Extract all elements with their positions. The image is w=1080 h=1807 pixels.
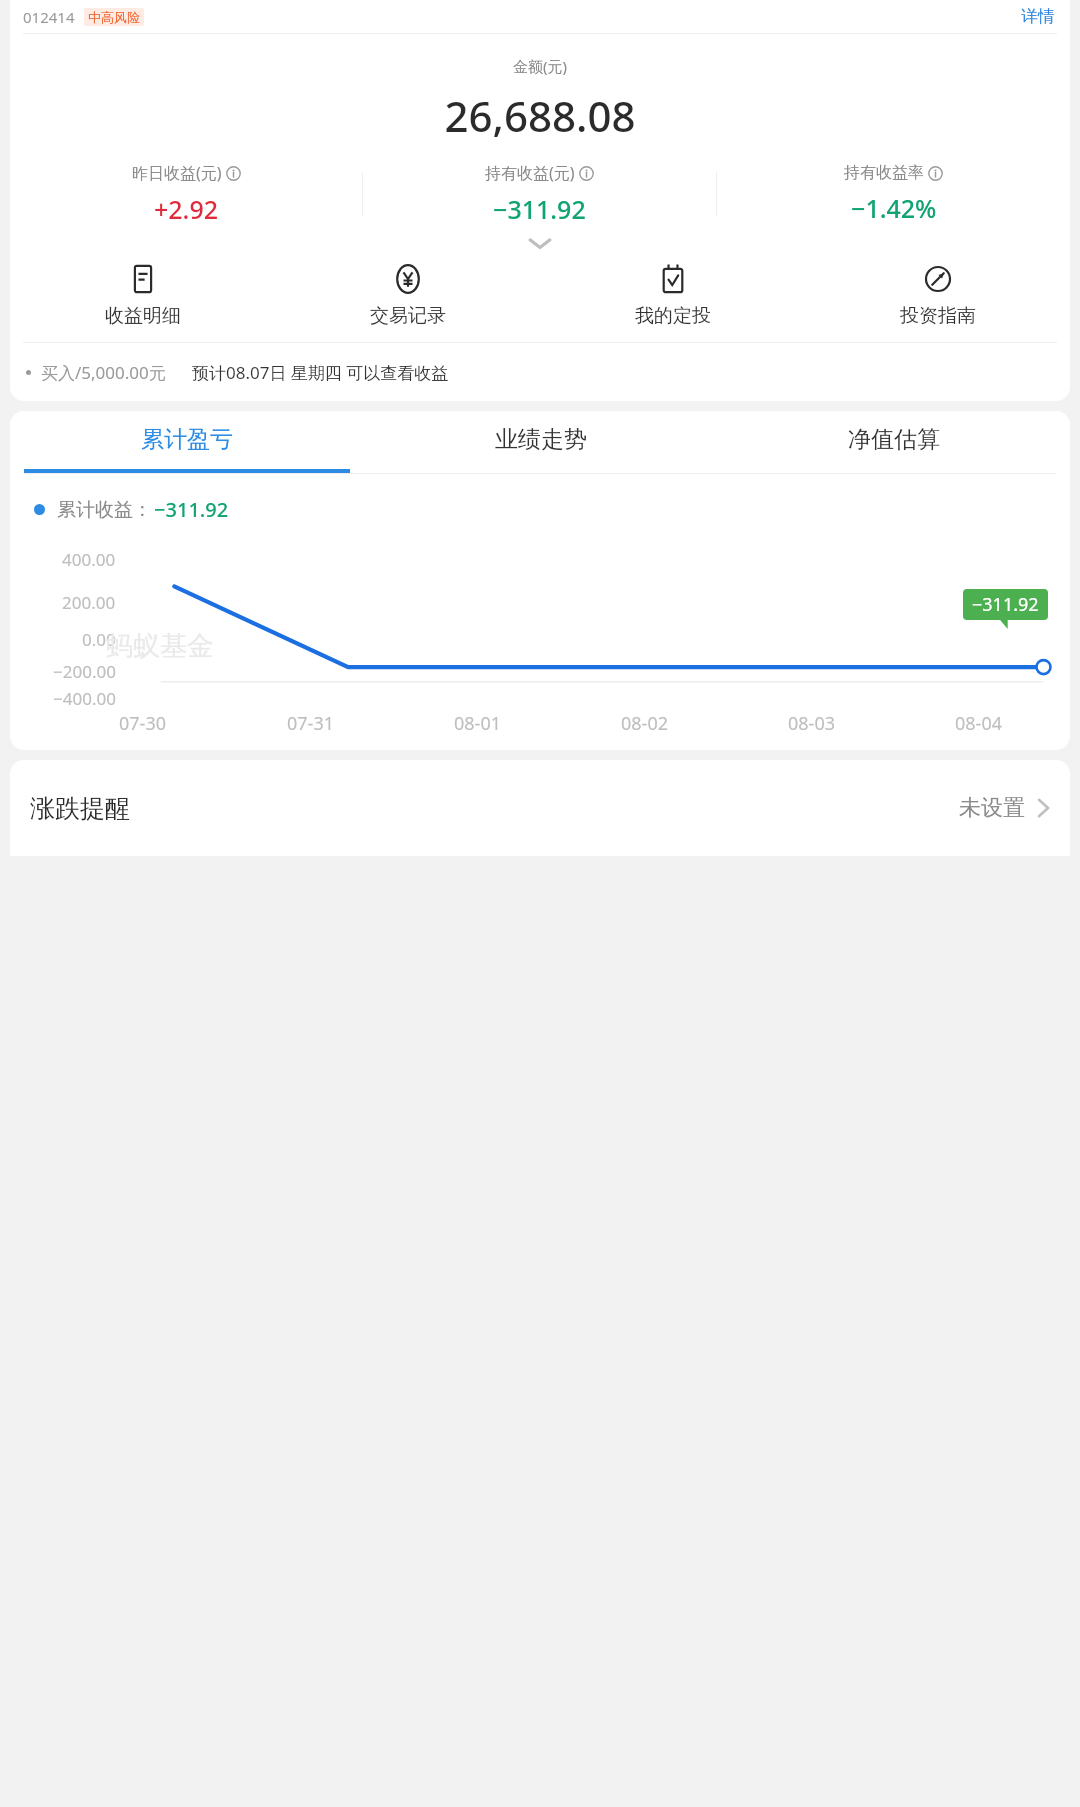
- staticText: 累计收益：: [57, 498, 152, 522]
- staticText: −200.00: [53, 660, 116, 683]
- staticText: 08-01: [454, 711, 501, 736]
- button[interactable]: 买入/5,000.00元: [10, 343, 1070, 401]
- staticText: 26,688.08: [10, 87, 1070, 144]
- staticText: −311.92: [972, 592, 1039, 617]
- button[interactable]: 净值估算: [717, 411, 1070, 473]
- staticText: 涨跌提醒: [30, 793, 130, 824]
- staticText: 交易记录: [370, 304, 446, 328]
- button[interactable]: 业绩走势: [364, 411, 717, 473]
- staticText: 净值估算: [848, 425, 940, 454]
- staticText: +2.92: [154, 192, 219, 226]
- staticText: 投资指南: [900, 304, 976, 328]
- staticText: 蚂蚁基金: [106, 629, 214, 663]
- button[interactable]: 昨日收益(元): [10, 162, 362, 226]
- staticText: 200.00: [62, 591, 116, 614]
- staticText: −1.42%: [851, 191, 937, 225]
- staticText: 0.00: [82, 628, 116, 651]
- staticText: 买入/5,000.00元: [41, 361, 166, 384]
- staticText: 我的定投: [635, 304, 711, 328]
- staticText: 08-04: [955, 711, 1002, 736]
- staticText: 收益明细: [105, 304, 181, 328]
- staticText: 详情: [1021, 6, 1055, 27]
- staticText: −311.92: [493, 192, 586, 226]
- staticText: 07-31: [287, 711, 334, 736]
- staticText: 持有收益率: [844, 163, 924, 183]
- staticText: 中高风险: [88, 9, 140, 25]
- button[interactable]: 持有收益率: [717, 162, 1070, 226]
- button[interactable]: 涨跌提醒: [10, 760, 1070, 856]
- staticText: 400.00: [62, 548, 116, 571]
- button[interactable]: 累计盈亏: [10, 411, 364, 473]
- staticText: −311.92: [154, 496, 229, 523]
- button[interactable]: 我的定投: [540, 260, 805, 332]
- button[interactable]: 详情: [1019, 2, 1057, 31]
- button[interactable]: 投资指南: [805, 260, 1070, 332]
- staticText: 持有收益(元): [485, 162, 575, 184]
- button[interactable]: 交易记录: [275, 260, 540, 332]
- staticText: 012414: [23, 7, 75, 27]
- staticText: 金额(元): [10, 56, 1070, 76]
- staticText: 昨日收益(元): [132, 162, 222, 184]
- button[interactable]: Expand details: [10, 226, 1070, 260]
- staticText: 未设置: [959, 794, 1025, 822]
- button[interactable]: 持有收益(元): [363, 162, 716, 226]
- staticText: 预计08.07日 星期四 可以查看收益: [192, 361, 449, 384]
- staticText: 业绩走势: [495, 425, 587, 454]
- staticText: 07-30: [119, 711, 166, 736]
- staticText: 08-03: [788, 711, 835, 736]
- staticText: 累计盈亏: [141, 425, 233, 454]
- staticText: −400.00: [53, 687, 116, 709]
- button[interactable]: 收益明细: [10, 260, 275, 332]
- staticText: 08-02: [621, 711, 668, 736]
